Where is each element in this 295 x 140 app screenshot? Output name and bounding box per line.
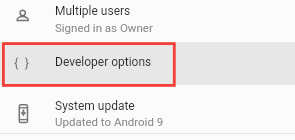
staticText: Developer options (55, 55, 152, 69)
staticText: System update (55, 99, 135, 113)
staticText: Multiple users (55, 4, 131, 18)
staticText: Signed in as Owner (55, 21, 153, 34)
button[interactable]: System update (0, 93, 295, 133)
staticText: { } (14, 55, 30, 70)
staticText: Updated to Android 9 (55, 115, 164, 128)
button[interactable]: Multiple users (0, 0, 295, 42)
button[interactable]: Developer options (0, 42, 295, 85)
